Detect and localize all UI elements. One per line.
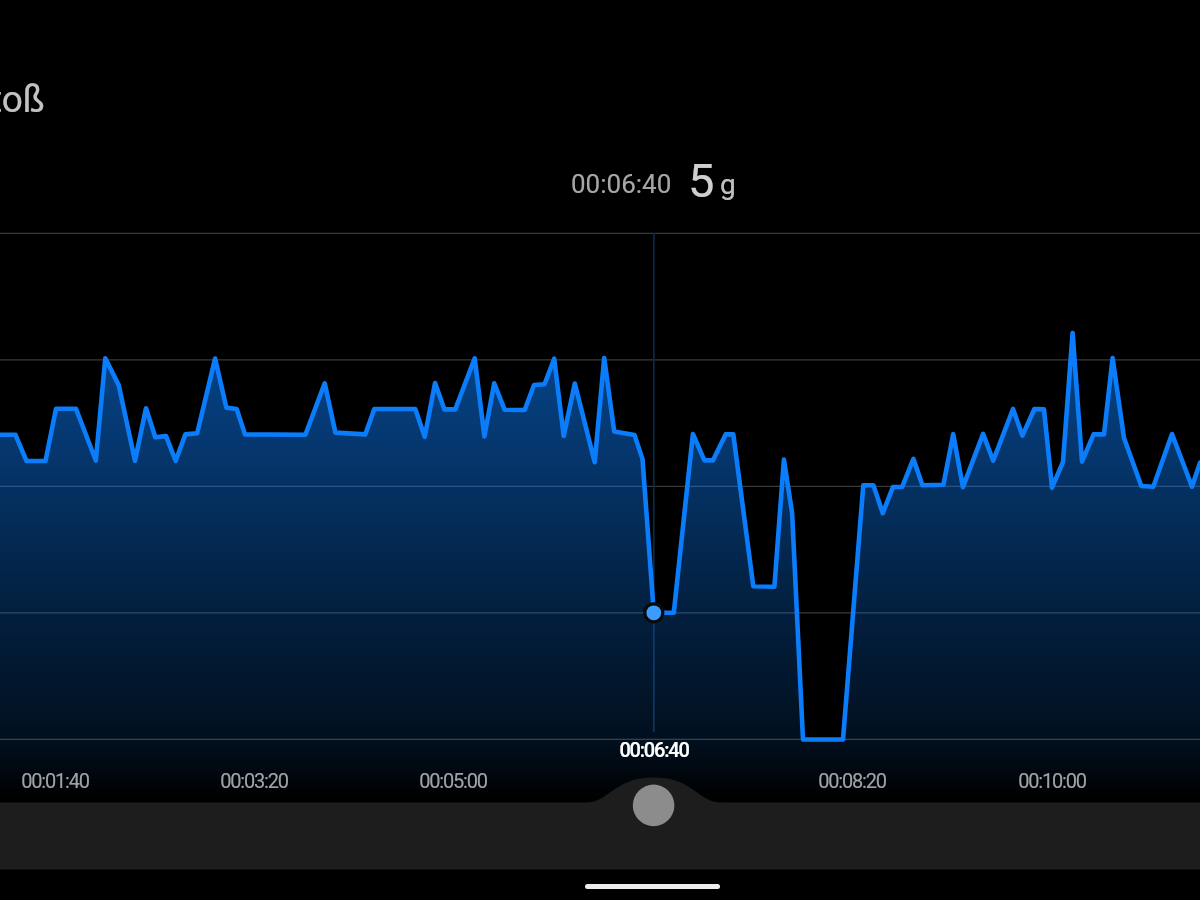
staticText: 00:06:40 (594, 738, 714, 761)
staticText: toß (0, 78, 45, 121)
staticText: 00:03:20 (194, 769, 314, 792)
staticText: 00:05:00 (393, 769, 513, 792)
staticText: 00:10:00 (992, 769, 1112, 792)
button[interactable]: Scrub position (628, 780, 680, 832)
button[interactable]: Impact chart, drag to scrub (0, 0, 1200, 802)
staticText: 00:08:20 (792, 769, 912, 792)
staticText: 5 (688, 153, 715, 208)
staticText: 00:06:40 (571, 169, 672, 199)
staticText: g (720, 168, 736, 201)
staticText: 00:01:40 (0, 769, 115, 792)
